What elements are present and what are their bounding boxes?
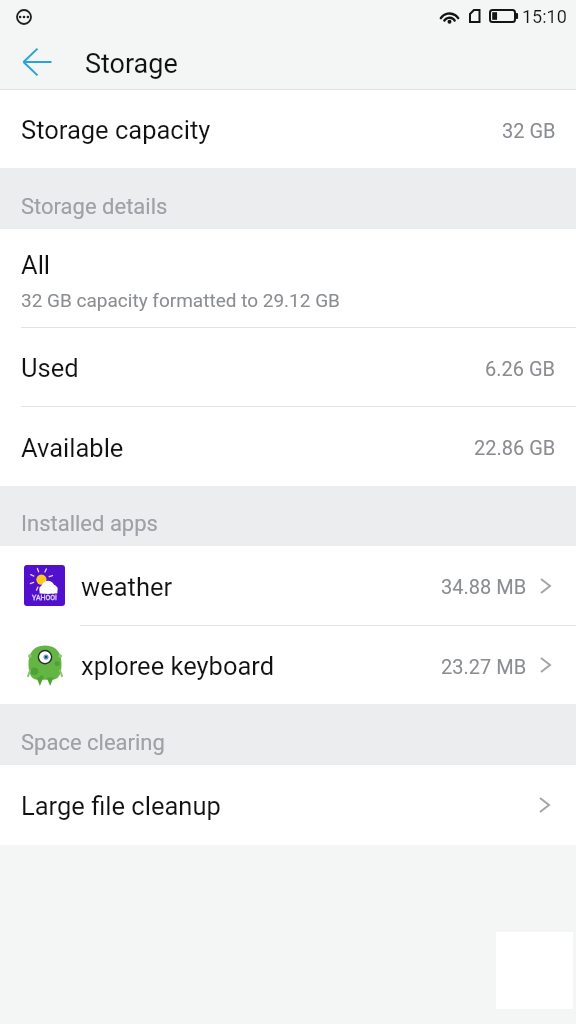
staticText: 32 GB capacity formatted to 29.12 GB [21,289,340,311]
staticText: 32 GB [502,119,556,142]
staticText: 6.26 GB [485,357,556,380]
button[interactable]: Storage capacity [0,90,576,168]
staticText: All [21,250,51,280]
button[interactable]: Back [3,38,51,86]
staticText: Installed apps [21,511,158,537]
button[interactable]: Available [0,407,576,486]
staticText: Storage [85,48,178,80]
other: Notifications [16,9,32,25]
button[interactable]: Used [0,328,576,406]
staticText: weather [81,572,173,602]
button[interactable]: YAHOO! [0,546,576,625]
button[interactable]: xploree keyboard [0,626,576,704]
staticText: Available [21,433,124,463]
staticText: 34.88 MB [441,575,527,598]
staticText: Storage capacity [21,115,211,145]
staticText: Space clearing [21,730,165,756]
staticText: Storage details [21,194,168,220]
staticText: Large file cleanup [21,791,221,821]
staticText: 15:10 [522,6,567,27]
staticText: 23.27 MB [441,655,527,678]
staticText: Used [21,353,79,383]
staticText: xploree keyboard [81,651,275,681]
staticText: 22.86 GB [474,436,556,459]
button[interactable]: All [0,229,576,327]
staticText: YAHOO! [32,594,57,602]
button[interactable]: Large file cleanup [0,765,576,845]
